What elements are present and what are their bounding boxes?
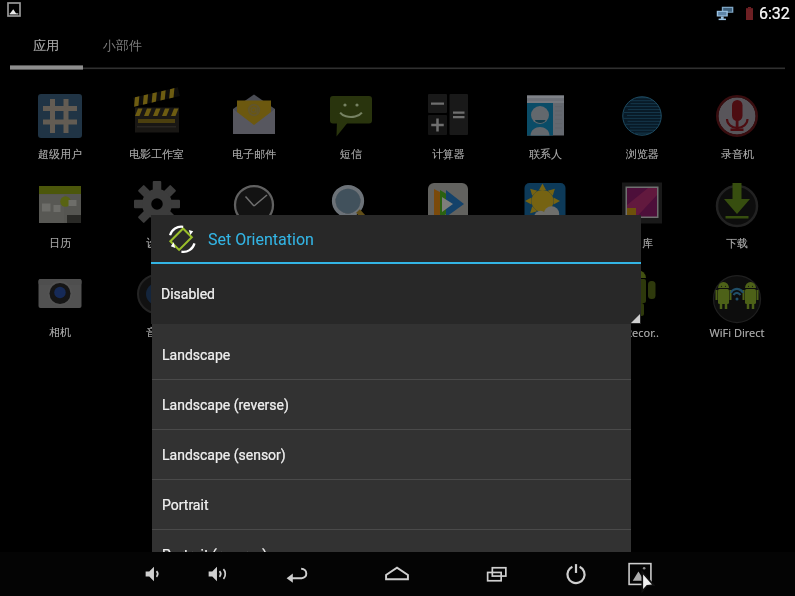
staticText: Portrait (reverse) <box>162 547 268 553</box>
staticText: 图库 <box>631 236 653 250</box>
button[interactable]: 文件管理 <box>205 269 302 358</box>
button[interactable]: WiFi Direct <box>690 269 783 358</box>
staticText: Landscape <box>162 347 231 363</box>
staticText: 短信 <box>340 147 362 161</box>
staticText: 相机 <box>49 325 71 339</box>
button[interactable]: 浏览器 <box>593 91 690 180</box>
button[interactable]: Disabled <box>151 264 641 324</box>
staticText: Portrait <box>162 497 209 513</box>
staticText: Recor.. <box>625 325 659 340</box>
staticText: 浏览器 <box>626 147 659 161</box>
button[interactable]: Power <box>558 552 594 596</box>
button[interactable]: 应用 <box>8 31 84 59</box>
button[interactable]: 设置 <box>108 180 205 269</box>
button[interactable]: Landscape (sensor) <box>152 430 631 479</box>
staticText: 录音机 <box>721 147 754 161</box>
button[interactable]: 联系人 <box>496 91 593 180</box>
button[interactable]: 小部件 <box>84 31 160 59</box>
button[interactable]: 影音播放 <box>399 180 496 269</box>
button[interactable]: 音乐 <box>108 269 205 358</box>
staticText: 小部件 <box>103 37 142 53</box>
staticText: Set Orientation <box>208 230 314 249</box>
button[interactable]: 搜索 <box>302 180 399 269</box>
button[interactable]: Volume down <box>137 552 173 596</box>
button[interactable]: 电影工作室 <box>108 91 205 180</box>
staticText: 日历 <box>49 236 71 250</box>
staticText: WiFi Direct <box>709 325 765 340</box>
staticText: 超级用户 <box>38 147 82 161</box>
button[interactable]: 天气 <box>496 180 593 269</box>
button[interactable]: 图库 <box>593 180 690 269</box>
button[interactable]: Screenshot <box>622 552 658 596</box>
staticText: Landscape (sensor) <box>162 447 286 463</box>
button[interactable]: 超级用户 <box>11 91 108 180</box>
button[interactable]: Home <box>379 552 415 596</box>
staticText: 音乐 <box>146 325 168 339</box>
staticText: 时钟 <box>243 236 265 250</box>
button[interactable]: 视频 <box>302 269 399 358</box>
button[interactable]: Back <box>279 552 315 596</box>
button[interactable]: 计算器 <box>399 91 496 180</box>
staticText: 计算器 <box>432 147 465 161</box>
button[interactable]: 时钟 <box>205 180 302 269</box>
staticText: 6:32 <box>759 4 790 23</box>
button[interactable]: Portrait (reverse) <box>152 530 631 553</box>
staticText: 应用 <box>33 37 59 53</box>
staticText: 电影工作室 <box>129 147 184 161</box>
button[interactable]: 日历 <box>11 180 108 269</box>
staticText: 联系人 <box>529 147 562 161</box>
button[interactable]: Portrait <box>152 480 631 529</box>
staticText: 下载 <box>726 236 748 250</box>
staticText: Landscape (reverse) <box>162 397 289 413</box>
button[interactable]: Recor.. <box>593 269 690 358</box>
button[interactable]: 下载 <box>690 180 783 269</box>
button[interactable]: Landscape <box>152 330 631 379</box>
button[interactable]: Landscape (reverse) <box>152 380 631 429</box>
other: Screenshot captured <box>8 3 20 16</box>
button[interactable]: 地图 <box>399 269 496 358</box>
button[interactable]: 短信 <box>302 91 399 180</box>
button[interactable]: 相机 <box>11 269 108 358</box>
staticText: 电子邮件 <box>232 147 276 161</box>
button[interactable]: 录音机 <box>690 91 783 180</box>
button[interactable]: Recents <box>479 552 515 596</box>
staticText: Disabled <box>161 286 216 302</box>
button[interactable]: 电子市场 <box>496 269 593 358</box>
button[interactable]: Volume up <box>200 552 236 596</box>
button[interactable]: 电子邮件 <box>205 91 302 180</box>
staticText: 设置 <box>146 236 168 250</box>
